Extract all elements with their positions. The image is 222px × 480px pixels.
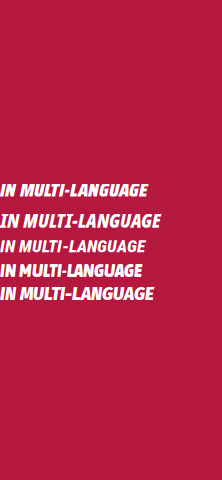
staticText: IN MULTI-LANGUAGE <box>0 284 154 305</box>
staticText: IN MULTI-LANGUAGE <box>0 259 142 281</box>
staticText: IN MULTI-LANGUAGE <box>0 236 145 256</box>
staticText: IN MULTI-LANGUAGE <box>0 175 148 205</box>
staticText: IN MULTI-LANGUAGE <box>0 208 161 233</box>
